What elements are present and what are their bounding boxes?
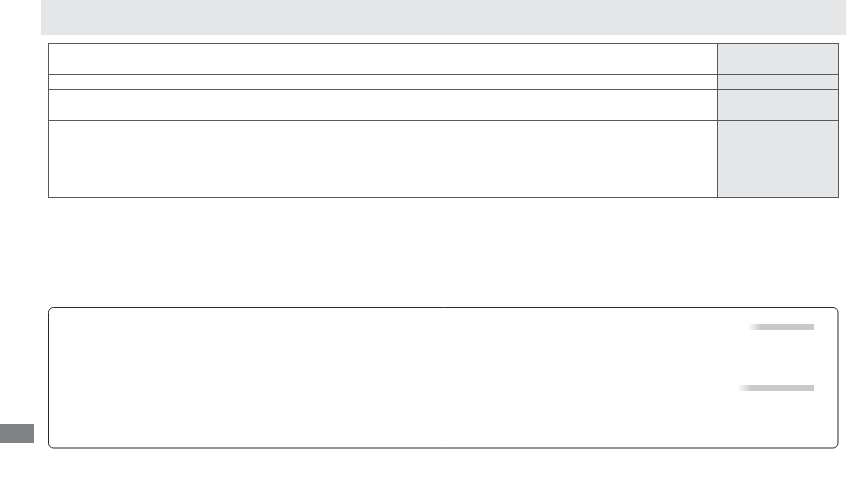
button[interactable]: Row 2 (48, 75, 839, 89)
button[interactable]: Summary card (48, 307, 839, 449)
button[interactable]: Row 4 (48, 121, 839, 197)
button[interactable]: Row 1 (48, 43, 839, 74)
button[interactable]: Row 3 (48, 90, 839, 120)
